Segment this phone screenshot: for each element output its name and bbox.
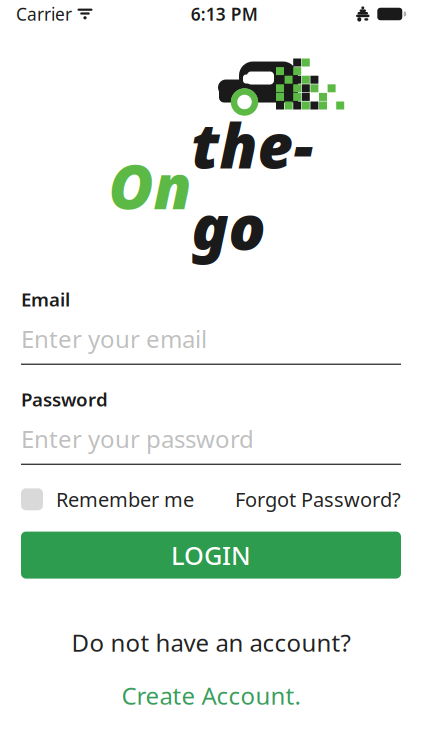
button[interactable]: Remember me xyxy=(21,486,194,513)
staticText: Create Account. xyxy=(121,679,300,711)
button[interactable]: Create Account. xyxy=(111,674,310,716)
staticText: Password xyxy=(21,387,108,412)
staticText: Carrier xyxy=(16,2,72,25)
staticText: Forgot Password? xyxy=(235,486,401,513)
staticText: Enter your email xyxy=(21,323,207,355)
staticText: LOGIN xyxy=(171,538,251,572)
staticText: On xyxy=(108,145,191,226)
button[interactable]: LOGIN xyxy=(21,532,401,579)
staticText: Email xyxy=(21,287,70,312)
staticText: Remember me xyxy=(56,486,194,513)
staticText: Do not have an account? xyxy=(71,627,350,658)
staticText: 6:13 PM xyxy=(191,2,258,25)
button[interactable]: Forgot Password? xyxy=(235,486,401,513)
staticText: Enter your password xyxy=(21,423,254,455)
staticText: thego xyxy=(191,104,313,267)
